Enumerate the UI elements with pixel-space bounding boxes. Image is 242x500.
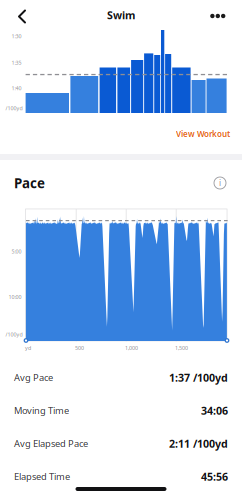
staticText: Swim	[107, 8, 135, 22]
staticText: Avg Pace	[14, 371, 53, 384]
staticText: 1:30	[11, 33, 21, 40]
staticText: Elapsed Time	[14, 470, 70, 483]
staticText: 45:56	[201, 469, 228, 484]
staticText: 34:06	[201, 403, 228, 418]
button[interactable]: Avg Pace	[0, 361, 242, 394]
staticText: 500	[75, 344, 84, 352]
button[interactable]: Elapsed Time	[0, 460, 242, 493]
button[interactable]: Avg Elapsed Pace	[0, 427, 242, 460]
staticText: Avg Elapsed Pace	[14, 437, 88, 450]
button[interactable]: Back	[0, 0, 44, 30]
staticText: View Workout	[176, 129, 230, 139]
staticText: 1:40	[11, 85, 21, 92]
button[interactable]: Moving Time	[0, 394, 242, 427]
staticText: Moving Time	[14, 404, 69, 417]
staticText: yd	[25, 344, 31, 352]
staticText: 2:11 /100yd	[169, 436, 228, 451]
button[interactable]: View Workout	[176, 124, 242, 144]
staticText: /100yd	[5, 331, 22, 338]
button[interactable]: More options	[198, 0, 242, 30]
staticText: 5:00	[11, 248, 21, 255]
staticText: /100yd	[5, 105, 22, 112]
staticText: Pace	[14, 174, 45, 192]
staticText: 1:37 /100yd	[169, 370, 228, 385]
staticText: 10:00	[8, 293, 21, 301]
staticText: 1:35	[11, 59, 21, 66]
staticText: 1,500	[175, 344, 188, 352]
staticText: i	[219, 178, 221, 188]
staticText: 1,000	[125, 344, 138, 352]
button[interactable]: About pace	[209, 172, 231, 194]
